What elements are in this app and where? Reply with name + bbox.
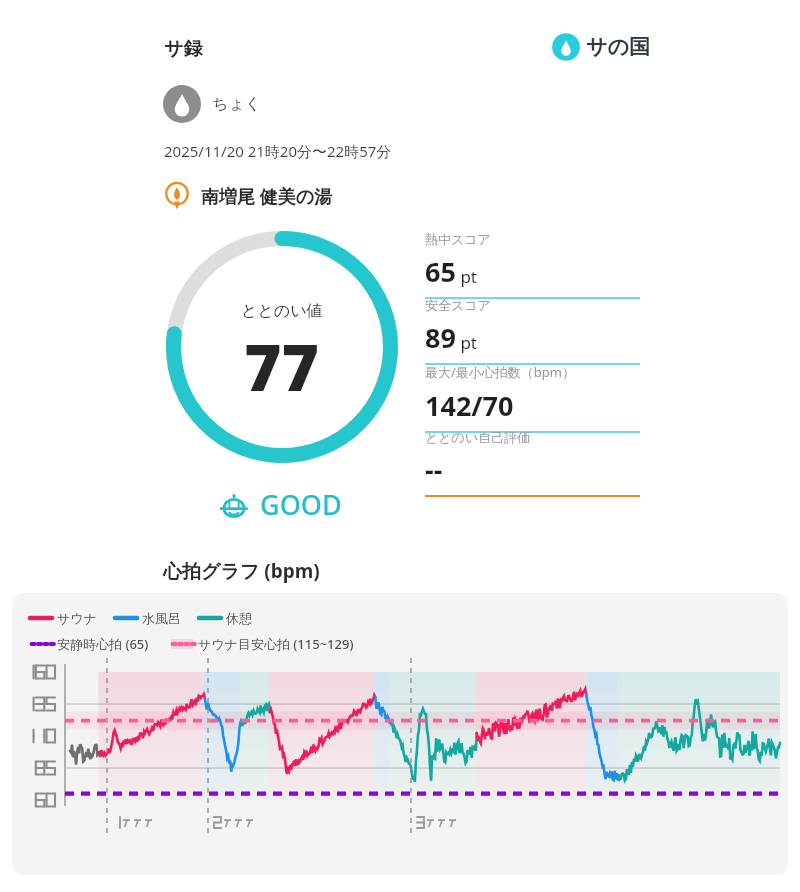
staticText: 142/70 — [425, 387, 514, 424]
button[interactable]: 安全スコア — [425, 297, 640, 365]
staticText: pt — [456, 331, 478, 354]
staticText: サ録 — [164, 37, 203, 61]
button[interactable]: 熱中スコア — [425, 231, 640, 299]
staticText: 休憩 — [226, 610, 252, 626]
staticText: -- — [425, 451, 443, 488]
staticText: pt — [456, 265, 478, 288]
staticText: サウナ目安心拍 (115~129) — [198, 635, 354, 653]
staticText: 水風呂 — [142, 610, 181, 626]
staticText: 南増尾 健美の湯 — [201, 184, 333, 209]
staticText: 熱中スコア — [425, 231, 491, 247]
staticText: 心拍グラフ (bpm) — [163, 558, 320, 584]
staticText: ととのい値 — [241, 301, 323, 321]
button[interactable]: GOOD — [216, 486, 342, 523]
button[interactable]: ととのい自己評価 — [425, 429, 640, 497]
staticText: 最大/最小心拍数（bpm） — [425, 363, 575, 381]
staticText: GOOD — [260, 486, 342, 523]
staticText: サウナ — [57, 610, 97, 626]
staticText: サの国 — [586, 34, 650, 60]
button[interactable]: サウナ — [12, 593, 788, 875]
staticText: 89 — [425, 319, 456, 356]
button[interactable]: 南増尾 健美の湯 — [162, 181, 333, 211]
staticText: 安全スコア — [425, 297, 491, 313]
staticText: ととのい自己評価 — [425, 429, 531, 445]
staticText: 65 — [425, 253, 456, 290]
staticText: 安静時心拍 (65) — [57, 635, 149, 653]
button[interactable]: サの国 — [552, 33, 650, 61]
staticText: ちょく — [212, 94, 262, 114]
button[interactable]: ちょく — [163, 85, 262, 123]
button[interactable]: 最大/最小心拍数（bpm） — [425, 363, 640, 433]
staticText: 2025/11/20 21時20分〜22時57分 — [164, 141, 392, 161]
staticText: 77 — [244, 323, 320, 410]
